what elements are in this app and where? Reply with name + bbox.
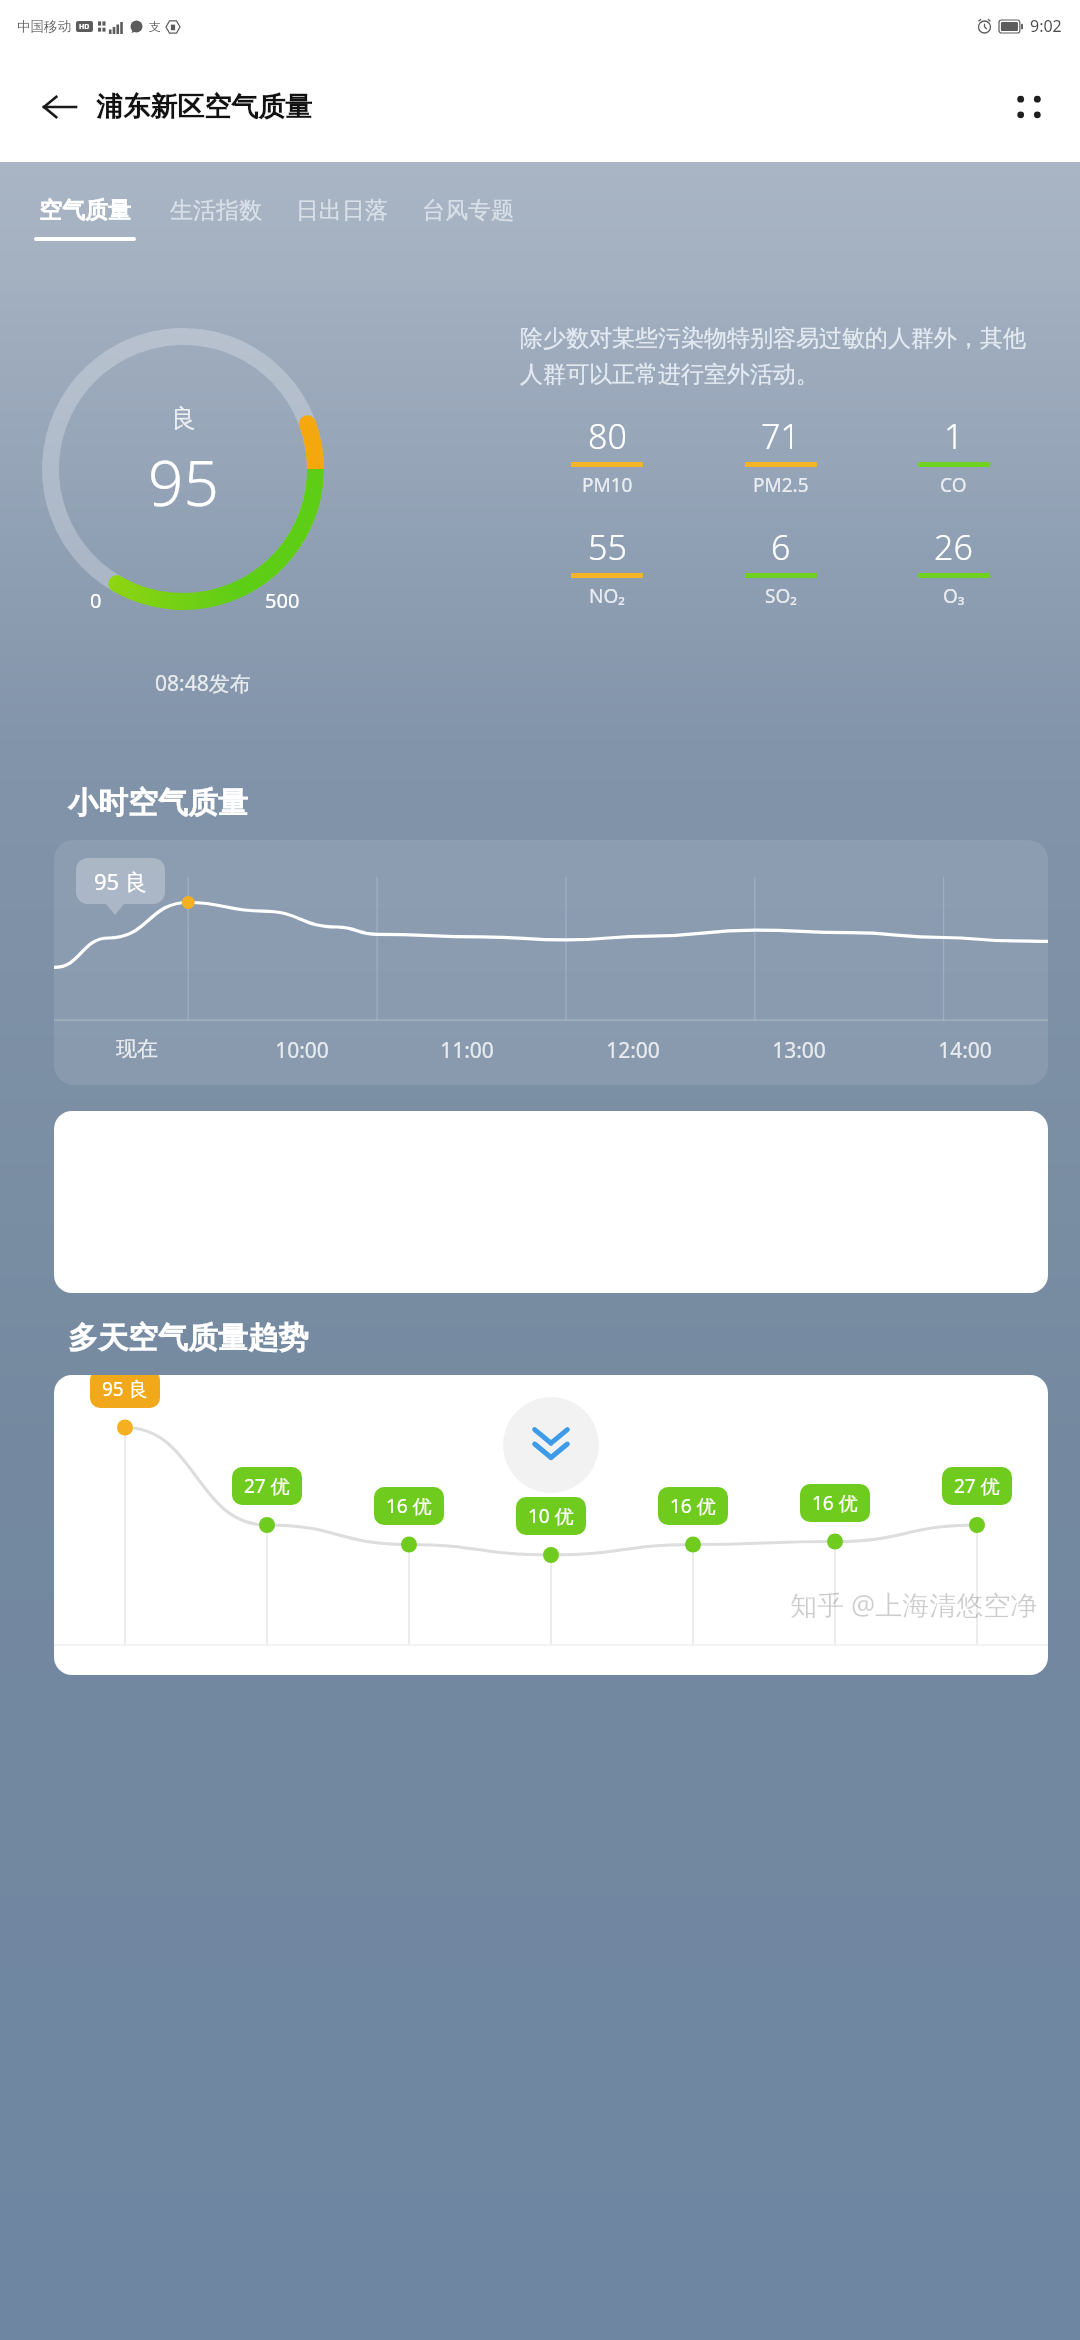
staticText: 台风专题 (422, 196, 514, 225)
staticText: CO (940, 472, 967, 498)
staticText: 16 优 (386, 1493, 432, 1519)
staticText: 27 优 (244, 1473, 290, 1499)
staticText: 生活指数 (170, 196, 262, 225)
staticText: 现在 (116, 1036, 158, 1062)
button[interactable]: Back (30, 78, 88, 136)
staticText: 55 (588, 524, 627, 570)
staticText: 良 (171, 403, 196, 434)
staticText: 80 (588, 413, 627, 459)
staticText: 12:00 (606, 1036, 660, 1065)
button[interactable]: 日出日落 (290, 196, 394, 237)
staticText: 08:48发布 (155, 669, 251, 698)
staticText: 27 优 (954, 1473, 1000, 1499)
staticText: O₃ (943, 583, 965, 609)
staticText: 26 (934, 524, 973, 570)
staticText: 6 (771, 524, 791, 570)
button[interactable]: More options (1000, 78, 1058, 136)
staticText: 11:00 (440, 1036, 494, 1065)
staticText: 1 (944, 413, 964, 459)
staticText: 10:00 (275, 1036, 329, 1065)
button[interactable]: 台风专题 (416, 196, 520, 237)
staticText: 95 良 (102, 1376, 148, 1402)
staticText: 0 (90, 587, 102, 614)
staticText: 除少数对某些污染物特别容易过敏的人群外，其他人群可以正常进行室外活动。 (520, 324, 1040, 389)
button[interactable]: 生活指数 (164, 196, 268, 237)
staticText: 16 优 (812, 1490, 858, 1516)
staticText: PM2.5 (753, 472, 809, 498)
staticText: HD (79, 22, 90, 32)
staticText: PM10 (582, 472, 633, 498)
button[interactable]: 95 良 (54, 1375, 1048, 1675)
button[interactable]: Expand more (503, 1397, 599, 1493)
staticText: 16 优 (670, 1493, 716, 1519)
staticText: 日出日落 (296, 196, 388, 225)
staticText: 知乎 @上海清悠空净 (790, 1586, 1038, 1623)
staticText: 13:00 (772, 1036, 826, 1065)
button[interactable]: 95 良 (54, 840, 1048, 1085)
staticText: 小时空气质量 (68, 784, 248, 822)
staticText: 95 (148, 440, 219, 524)
staticText: NO₂ (589, 583, 625, 609)
staticText: 10 优 (528, 1503, 574, 1529)
staticText: 500 (265, 587, 300, 614)
staticText: 中国移动 (17, 18, 71, 35)
button[interactable] (54, 1111, 1048, 1293)
staticText: 14:00 (938, 1036, 992, 1065)
button[interactable]: 空气质量 (28, 196, 142, 241)
staticText: 9:02 (1030, 15, 1062, 37)
staticText: 空气质量 (39, 196, 131, 225)
staticText: 95 良 (94, 866, 147, 896)
staticText: 多天空气质量趋势 (68, 1319, 308, 1357)
staticText: 浦东新区空气质量 (96, 90, 312, 124)
staticText: SO₂ (765, 583, 797, 609)
staticText: 71 (761, 413, 800, 459)
staticText: 支 (149, 19, 161, 34)
